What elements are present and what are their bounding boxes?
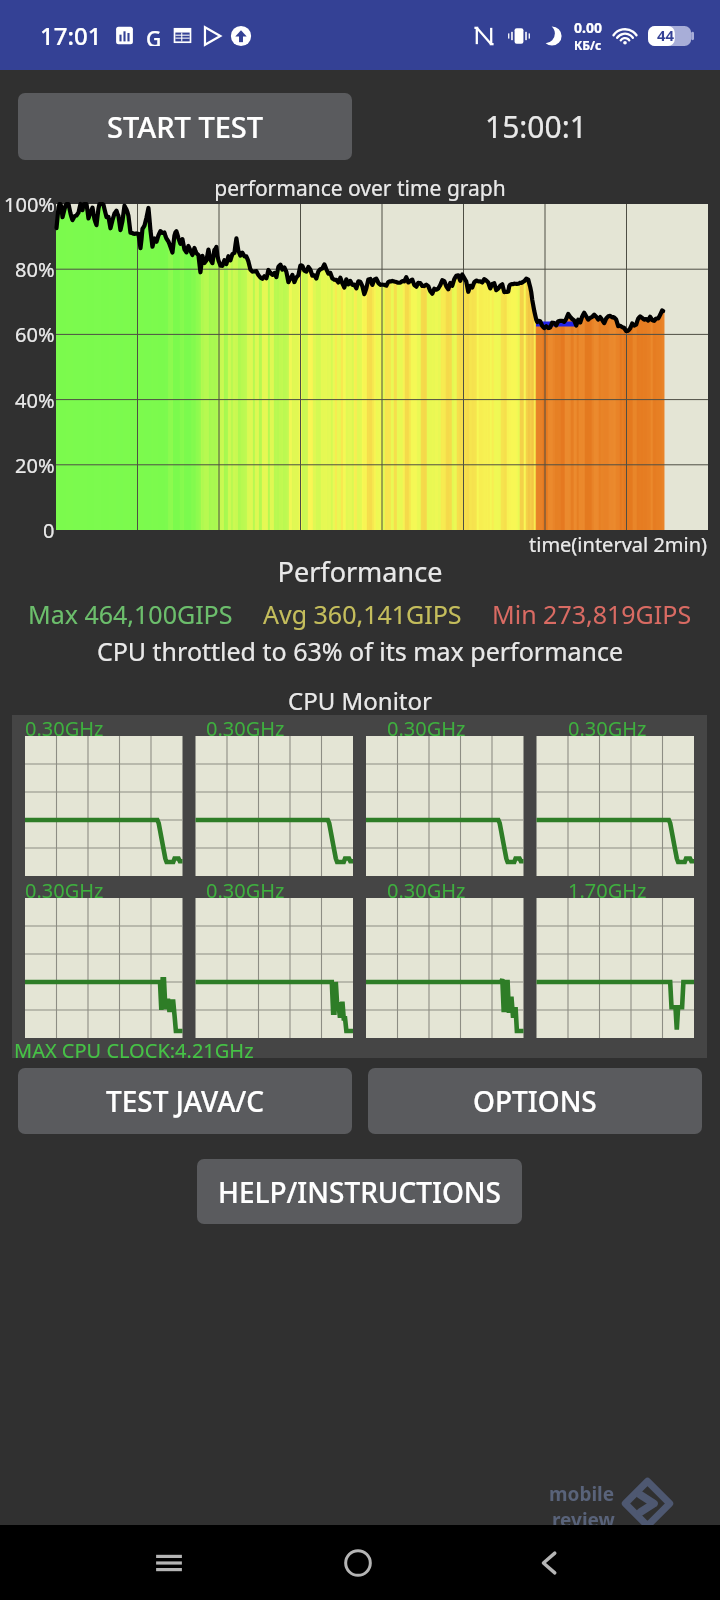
- staticText: 1.70GHz: [568, 877, 647, 904]
- staticText: HELP/INSTRUCTIONS: [218, 1173, 501, 1211]
- staticText: time(interval 2min): [529, 531, 708, 558]
- staticText: MAX CPU CLOCK:4.21GHz: [14, 1037, 254, 1064]
- staticText: 20%: [15, 452, 55, 479]
- staticText: performance over time graph: [0, 174, 720, 203]
- staticText: КБ/с: [574, 37, 602, 53]
- staticText: 0.30GHz: [25, 715, 104, 742]
- staticText: 0.00: [574, 18, 602, 37]
- staticText: 17:01: [40, 19, 102, 52]
- button[interactable]: TEST JAVA/C: [18, 1068, 352, 1134]
- button[interactable]: Recent apps: [129, 1525, 209, 1600]
- staticText: CPU Monitor: [0, 684, 720, 717]
- button[interactable]: START TEST: [18, 93, 352, 160]
- staticText: 0.30GHz: [387, 877, 466, 904]
- staticText: G: [146, 25, 162, 46]
- staticText: Min 273,819GIPS: [492, 597, 692, 631]
- staticText: mobile: [549, 1481, 615, 1507]
- staticText: Avg 360,141GIPS: [263, 597, 462, 631]
- staticText: 0.30GHz: [206, 877, 285, 904]
- button[interactable]: Home: [318, 1525, 398, 1600]
- staticText: Max 464,100GIPS: [28, 597, 233, 631]
- button[interactable]: OPTIONS: [368, 1068, 702, 1134]
- staticText: CPU throttled to 63% of its max performa…: [0, 634, 720, 668]
- staticText: OPTIONS: [473, 1082, 597, 1120]
- staticText: TEST JAVA/C: [106, 1082, 265, 1120]
- staticText: 0.30GHz: [568, 715, 647, 742]
- staticText: Performance: [0, 553, 720, 590]
- staticText: 60%: [15, 321, 55, 348]
- button[interactable]: HELP/INSTRUCTIONS: [197, 1159, 522, 1224]
- staticText: 0.30GHz: [206, 715, 285, 742]
- staticText: 0.30GHz: [387, 715, 466, 742]
- staticText: review: [552, 1507, 615, 1533]
- staticText: 0.30GHz: [25, 877, 104, 904]
- staticText: 100%: [4, 191, 55, 218]
- staticText: 40%: [15, 387, 55, 414]
- button[interactable]: Back: [510, 1525, 590, 1600]
- staticText: 44: [657, 25, 675, 45]
- staticText: 15:00:1: [485, 106, 587, 147]
- staticText: START TEST: [107, 107, 264, 146]
- staticText: 80%: [15, 256, 55, 283]
- staticText: 0: [43, 517, 55, 544]
